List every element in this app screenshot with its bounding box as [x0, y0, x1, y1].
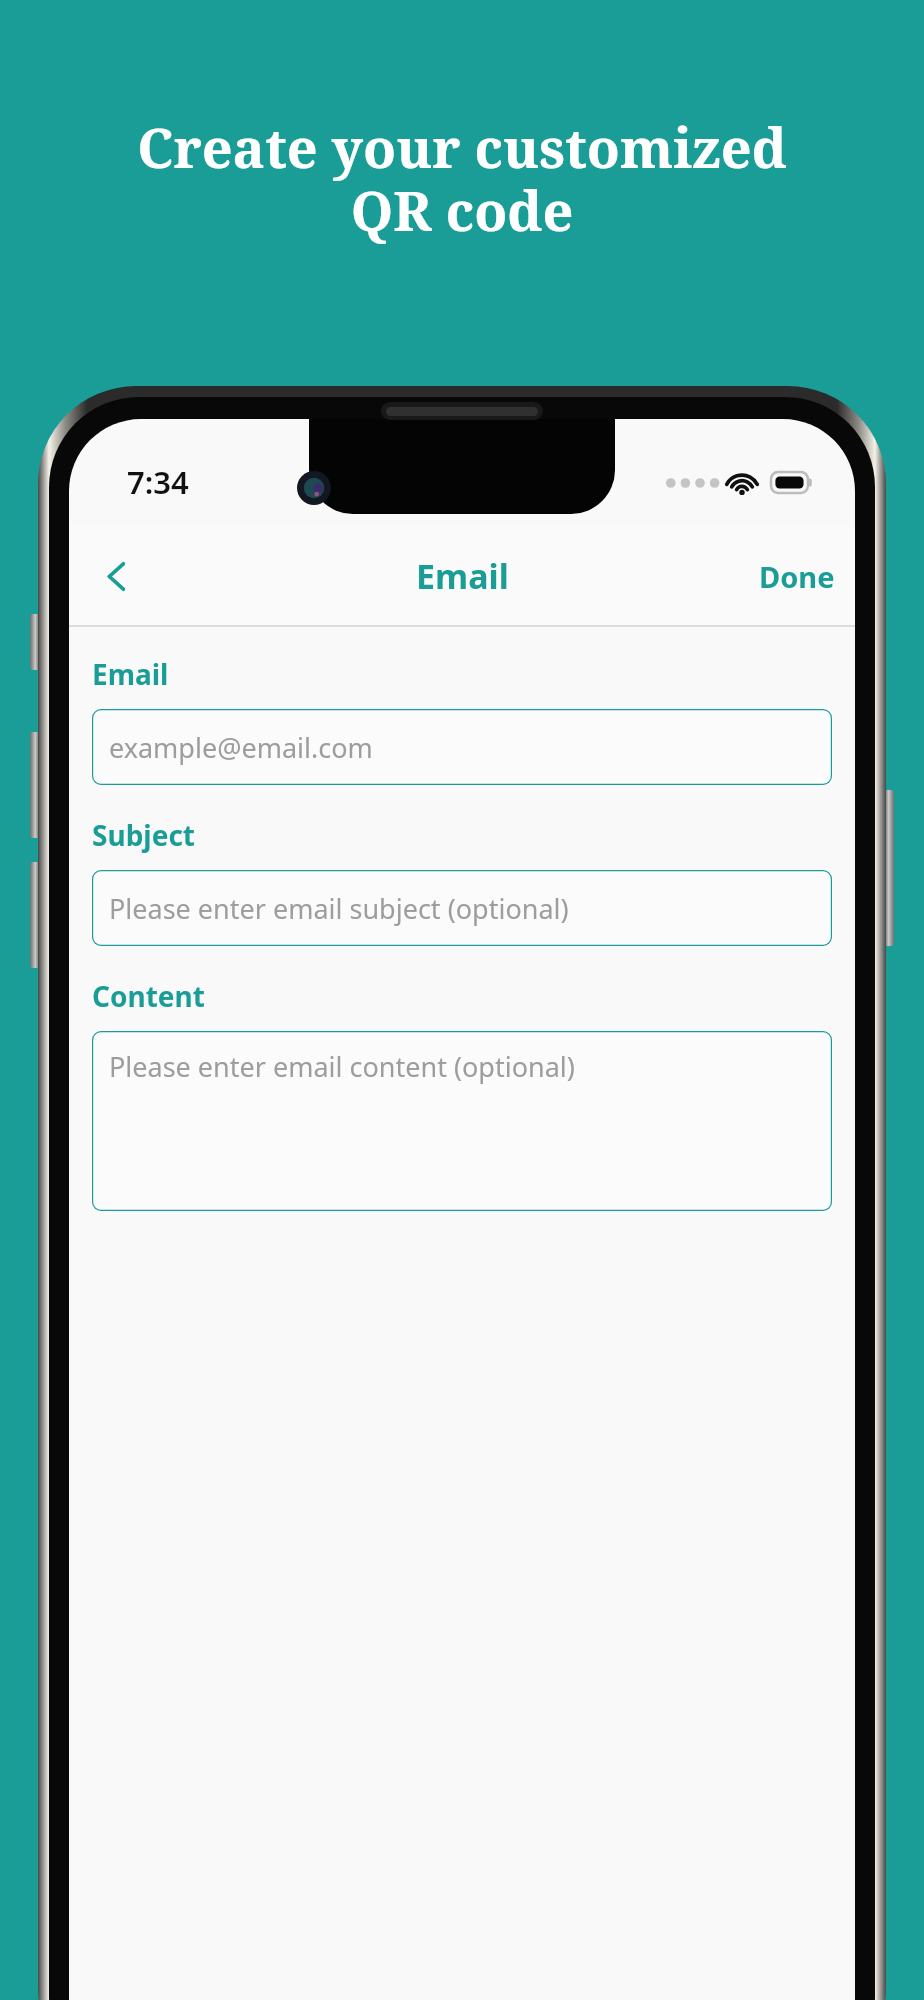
staticText: Done — [759, 557, 835, 596]
staticText: Email — [92, 655, 169, 693]
staticText: Please enter email subject (optional) — [109, 890, 569, 927]
button[interactable]: example@email.com — [92, 709, 832, 785]
button[interactable]: Back — [79, 539, 153, 613]
button[interactable]: Please enter email content (optional) — [92, 1031, 832, 1211]
staticText: Subject — [92, 816, 195, 854]
button[interactable]: Please enter email subject (optional) — [92, 870, 832, 946]
staticText: Please enter email content (optional) — [109, 1048, 575, 1085]
staticText: example@email.com — [109, 729, 373, 766]
staticText: 7:34 — [127, 461, 189, 503]
staticText: Create your customized QR code — [30, 110, 894, 247]
staticText: Email — [416, 553, 509, 599]
staticText: Content — [92, 977, 205, 1015]
button[interactable]: Done — [739, 539, 855, 614]
